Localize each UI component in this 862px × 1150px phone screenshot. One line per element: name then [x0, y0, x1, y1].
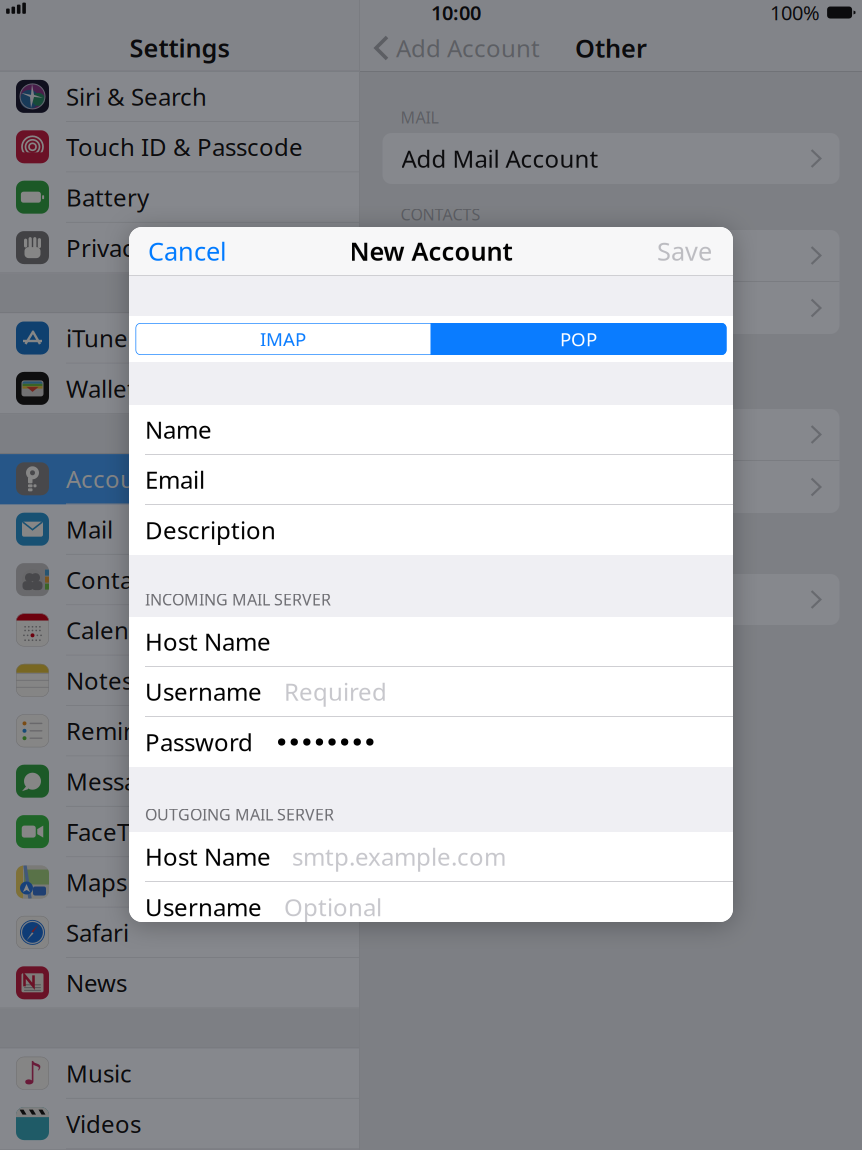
staticText: Name: [145, 414, 212, 445]
button[interactable]: POP: [430, 323, 726, 355]
staticText: Calendar: [66, 614, 167, 646]
button[interactable]: Videos: [0, 1099, 359, 1149]
staticText: Description: [145, 514, 276, 546]
staticText: Add Mail Account: [401, 143, 598, 174]
staticText: Optional: [284, 891, 382, 923]
staticText: FaceTime: [66, 816, 172, 848]
staticText: MAIL: [400, 107, 438, 128]
button[interactable]: Maps: [0, 857, 359, 908]
staticText: Add Account: [396, 32, 540, 64]
staticText: ♪: [22, 1055, 42, 1091]
staticText: Siri & Search: [66, 80, 207, 112]
button[interactable]: Add Account: [360, 23, 540, 73]
staticText: OUTGOING MAIL SERVER: [145, 804, 334, 825]
staticText: smtp.example.com: [292, 841, 506, 872]
button[interactable]: Add CardDAV Account: [382, 282, 839, 334]
button[interactable]: Mail: [0, 504, 359, 555]
button[interactable]: Add macOS Server Account: [382, 574, 839, 625]
staticText: Other: [575, 31, 647, 65]
staticText: Cancel: [148, 234, 227, 268]
staticText: New Account: [349, 234, 512, 268]
button[interactable]: Reminders: [0, 706, 359, 756]
staticText: Save: [657, 234, 712, 268]
staticText: Safari: [66, 916, 129, 948]
staticText: Wallet & Apple Pay: [66, 372, 277, 404]
staticText: CONTACTS: [400, 204, 480, 225]
staticText: Email: [145, 464, 205, 495]
staticText: Maps: [66, 866, 127, 898]
button[interactable]: Cancel: [129, 222, 227, 280]
staticText: News: [66, 967, 127, 999]
staticText: Accounts & Passwords: [66, 463, 319, 495]
button[interactable]: Safari: [0, 908, 359, 958]
staticText: Username: [145, 891, 262, 923]
staticText: Messages: [66, 765, 177, 797]
button[interactable]: iTunes & App Store: [0, 313, 359, 364]
staticText: Notes: [66, 664, 133, 696]
button[interactable]: FaceTime: [0, 807, 359, 857]
button[interactable]: Save: [657, 222, 733, 280]
button[interactable]: Wallet & Apple Pay: [0, 364, 359, 414]
button[interactable]: Siri & Search: [0, 72, 359, 122]
staticText: IMAP: [260, 327, 306, 351]
staticText: Add CardDAV Account: [401, 292, 648, 324]
staticText: iTunes & App Store: [66, 322, 280, 354]
button[interactable]: Privacy: [0, 223, 359, 273]
staticText: SERVERS: [400, 548, 466, 569]
staticText: 10:00: [431, 0, 481, 26]
staticText: Username: [145, 676, 262, 707]
staticText: Add LDAP Account: [401, 240, 611, 271]
button[interactable]: Touch ID & Passcode: [0, 122, 359, 172]
button[interactable]: ♪: [0, 1048, 359, 1099]
button[interactable]: Messages: [0, 756, 359, 807]
staticText: Host Name: [145, 841, 271, 872]
button[interactable]: Contacts: [0, 555, 359, 605]
button[interactable]: Add LDAP Account: [382, 230, 839, 281]
staticText: Required: [284, 676, 387, 707]
staticText: 100%: [770, 0, 820, 26]
button[interactable]: Accounts & Passwords: [0, 454, 359, 504]
button[interactable]: Battery: [0, 172, 359, 223]
staticText: Music: [66, 1057, 132, 1089]
button[interactable]: Add Mail Account: [382, 133, 839, 184]
staticText: INCOMING MAIL SERVER: [145, 589, 331, 610]
staticText: Host Name: [145, 626, 271, 657]
staticText: POP: [560, 327, 597, 351]
staticText: Battery: [66, 181, 149, 213]
staticText: Settings: [129, 31, 229, 64]
staticText: Contacts: [66, 564, 165, 596]
staticText: Password: [145, 726, 253, 758]
button[interactable]: Add Subscribed Calendar: [382, 461, 839, 513]
button[interactable]: News: [0, 958, 359, 1008]
staticText: Privacy: [66, 232, 146, 264]
staticText: Reminders: [66, 715, 188, 747]
button[interactable]: Notes: [0, 656, 359, 706]
button[interactable]: Add CalDAV Account: [382, 409, 839, 460]
staticText: Mail: [66, 513, 113, 545]
staticText: Touch ID & Passcode: [66, 131, 303, 163]
button[interactable]: Calendar: [0, 605, 359, 656]
button[interactable]: IMAP: [135, 323, 430, 355]
staticText: Videos: [66, 1108, 141, 1140]
